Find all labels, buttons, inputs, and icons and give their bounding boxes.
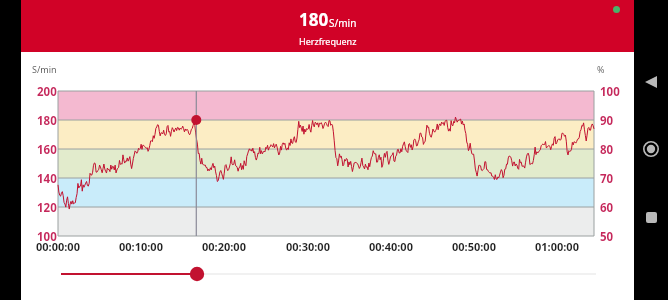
button[interactable] [21,260,634,290]
staticText: 70 [600,171,614,187]
staticText: 00:50:00 [452,239,496,254]
staticText: 120 [37,200,57,216]
button[interactable]: Home [634,132,668,166]
staticText: 00:10:00 [119,239,163,254]
staticText: 80 [600,142,614,158]
staticText: 160 [37,142,57,158]
staticText: S/min [329,16,357,30]
staticText: 00:30:00 [286,239,330,254]
staticText: 00:00:00 [36,239,80,254]
staticText: 60 [600,200,614,216]
button[interactable]: Recents [634,200,668,234]
staticText: 180 [37,113,57,129]
staticText: Herzfrequenz [299,35,357,47]
button[interactable]: 180 [21,0,634,52]
staticText: 90 [600,113,614,129]
staticText: 50 [600,229,614,245]
staticText: 00:40:00 [369,239,413,254]
staticText: 100 [37,229,57,245]
staticText: 00:20:00 [202,239,246,254]
staticText: % [597,63,605,75]
staticText: 180 [299,8,329,31]
staticText: 140 [37,171,57,187]
staticText: S/min [32,63,57,75]
staticText: 01:00:00 [535,239,579,254]
staticText: 100 [600,84,620,100]
staticText: 200 [37,84,57,100]
button[interactable]: Back [634,65,668,99]
